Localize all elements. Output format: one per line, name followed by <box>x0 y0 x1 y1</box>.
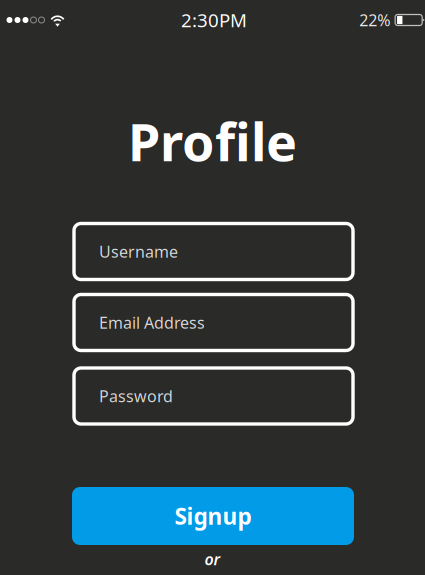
staticText: Email Address <box>99 312 205 333</box>
button[interactable]: Username <box>74 223 353 279</box>
button[interactable]: Signup <box>72 487 354 545</box>
staticText: 2:30PM <box>181 8 247 32</box>
button[interactable]: Password <box>74 368 353 424</box>
staticText: 22% <box>359 9 390 31</box>
staticText: Signup <box>174 501 251 531</box>
button[interactable]: Email Address <box>74 294 353 350</box>
staticText: or <box>204 548 220 570</box>
staticText: Username <box>99 241 178 262</box>
staticText: Profile <box>128 106 297 176</box>
staticText: Password <box>99 385 173 407</box>
